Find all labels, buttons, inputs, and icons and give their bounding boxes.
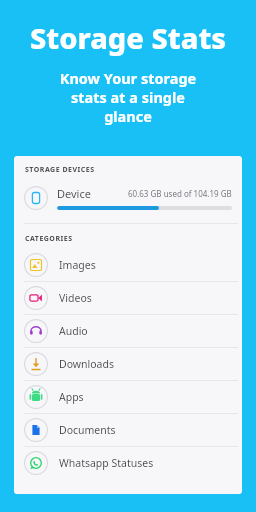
other: Images: [24, 253, 48, 277]
staticText: Device: [57, 186, 91, 201]
other: Documents: [24, 418, 48, 442]
staticText: 60.63 GB used of 104.19 GB: [128, 188, 232, 199]
button[interactable]: Apps: [14, 381, 242, 413]
button[interactable]: Device storage: [14, 180, 242, 216]
staticText: Apps: [59, 390, 84, 404]
other: Videos: [24, 286, 48, 310]
button[interactable]: Whatsapp Statuses: [14, 447, 242, 479]
staticText: Whatsapp Statuses: [59, 456, 154, 470]
staticText: Videos: [59, 291, 92, 305]
other: Downloads: [24, 352, 48, 376]
button[interactable]: Audio: [14, 315, 242, 347]
other: Device storage: [24, 186, 48, 210]
other: Whatsapp Statuses: [24, 451, 48, 475]
staticText: STORAGE DEVICES: [25, 165, 95, 175]
staticText: Documents: [59, 423, 116, 437]
button[interactable]: Downloads: [14, 348, 242, 380]
button[interactable]: Videos: [14, 282, 242, 314]
staticText: Audio: [59, 324, 88, 338]
other: Apps: [24, 385, 48, 409]
button[interactable]: Images: [14, 249, 242, 281]
staticText: Know Your storage stats at a single glan…: [18, 68, 238, 126]
staticText: Images: [59, 258, 96, 272]
button[interactable]: Documents: [14, 414, 242, 446]
other: Audio: [24, 319, 48, 343]
staticText: Storage Stats: [0, 18, 256, 57]
staticText: Downloads: [59, 357, 114, 371]
staticText: CATEGORIES: [25, 234, 73, 244]
